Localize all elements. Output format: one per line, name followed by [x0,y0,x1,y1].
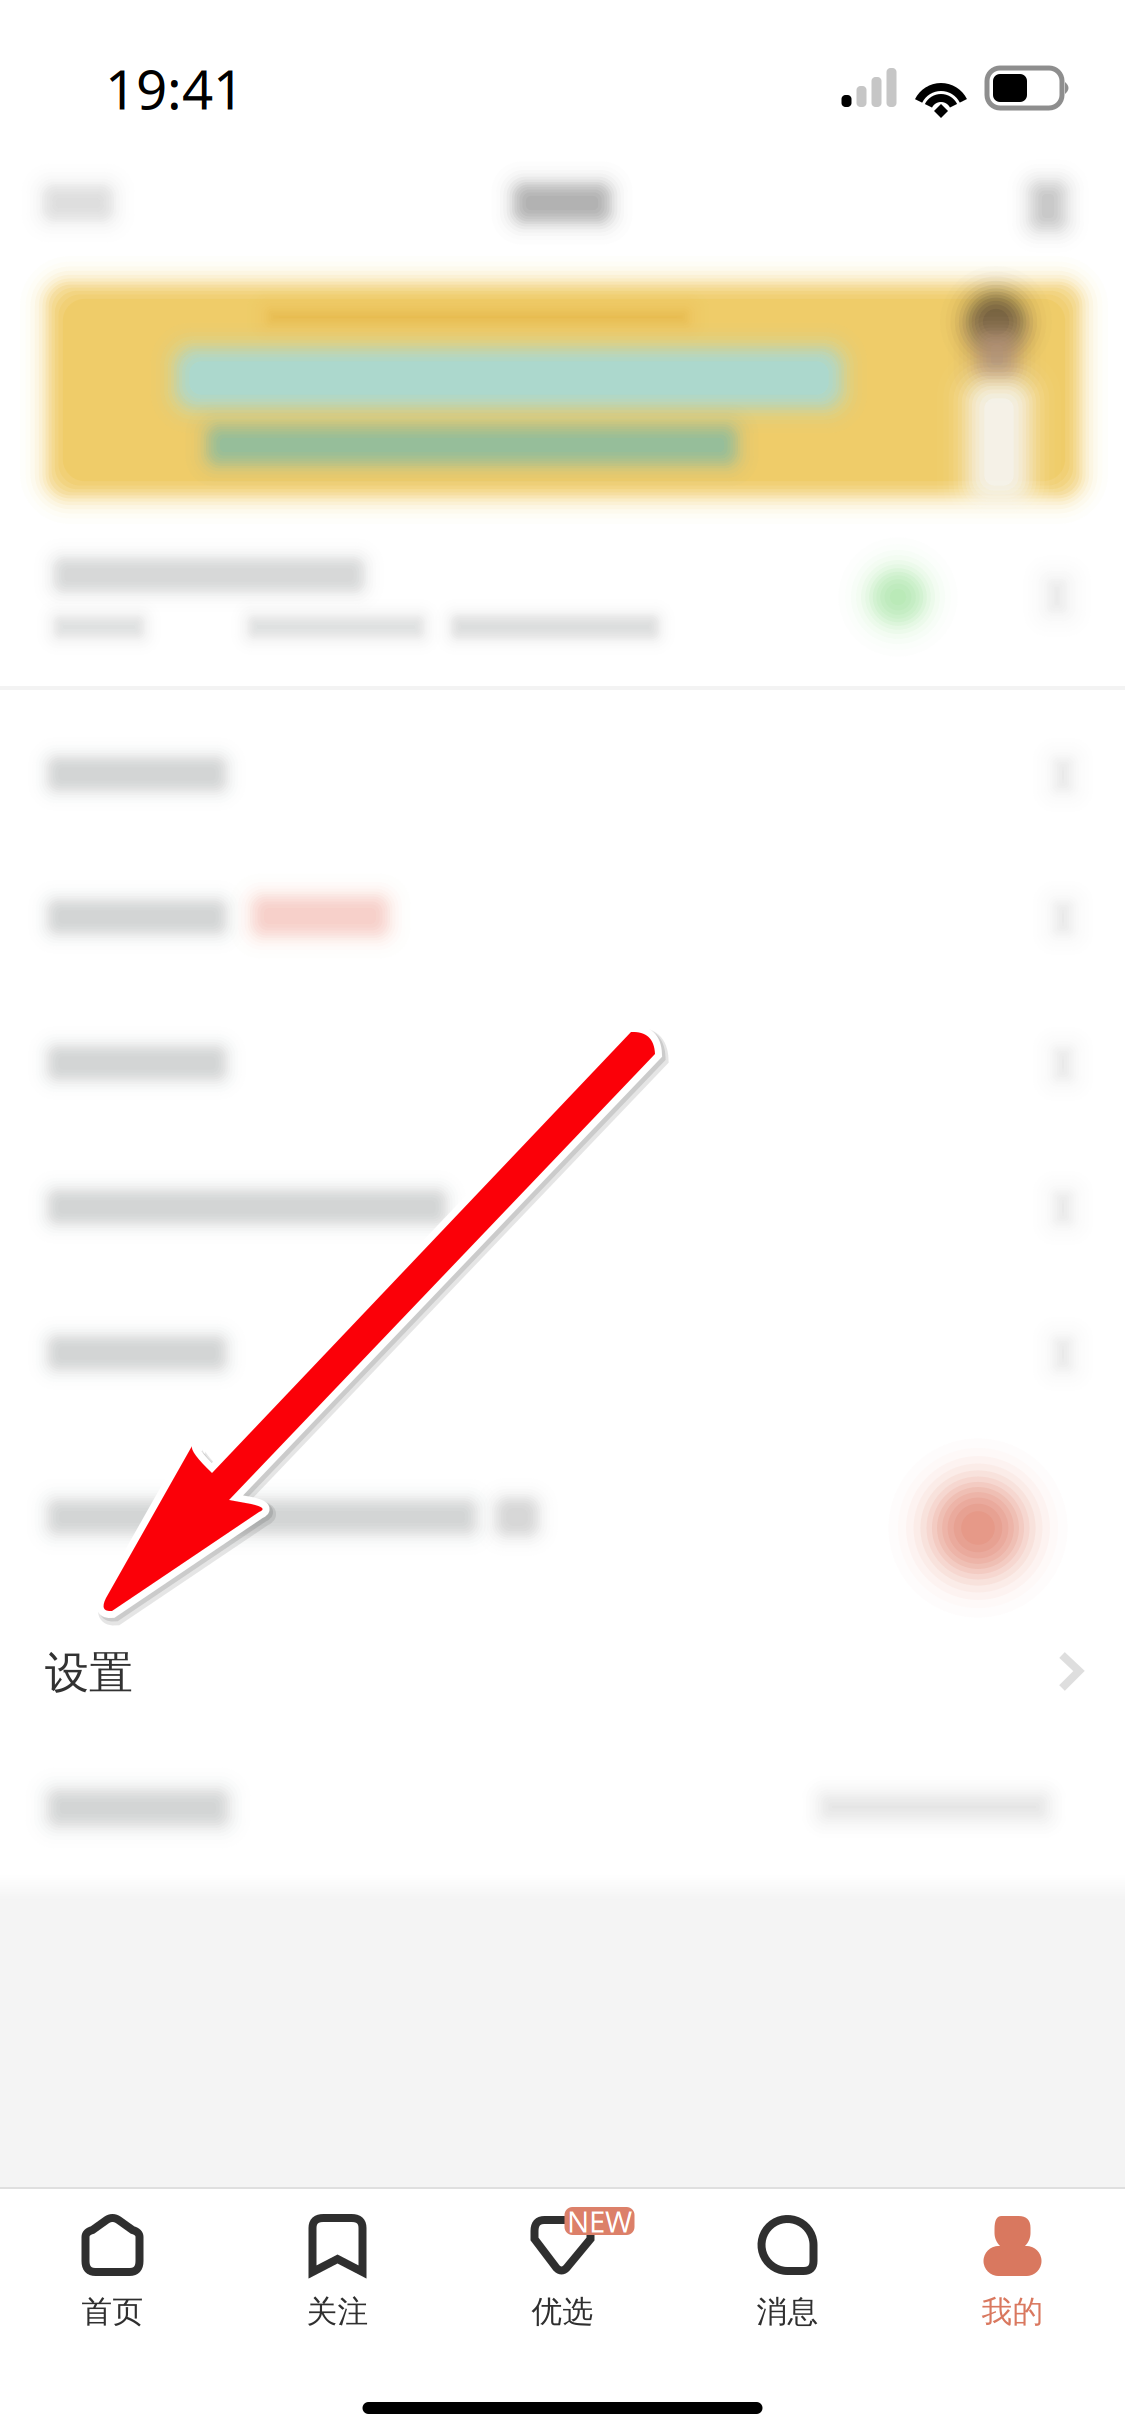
staticText: 设置 [45,1646,133,1700]
staticText: 我的 [981,2293,1043,2331]
button[interactable]: 我的 [900,2189,1125,2331]
staticText: 首页 [81,2293,143,2331]
button[interactable]: 关注 [225,2189,450,2331]
button[interactable]: 优选 [450,2189,675,2331]
staticText: 19:41 [105,52,244,125]
button[interactable]: 设置 [0,1597,1125,1737]
staticText: 优选 [531,2293,593,2331]
staticText: 关注 [306,2293,368,2331]
staticText: 消息 [756,2293,818,2331]
staticText: NEW [567,2201,632,2240]
button[interactable]: 首页 [0,2189,225,2331]
button[interactable]: 消息 [675,2189,900,2331]
